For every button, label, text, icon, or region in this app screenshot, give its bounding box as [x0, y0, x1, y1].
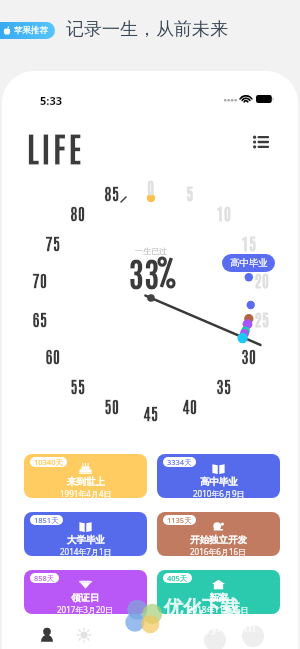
staticText: 858天 — [34, 573, 55, 583]
button[interactable]: 858天 — [24, 570, 147, 614]
staticText: 85 — [98, 182, 126, 203]
staticText: 开始独立开发 — [190, 534, 247, 546]
button[interactable]: 10340天 — [24, 454, 147, 498]
staticText: 领证日 — [71, 592, 100, 604]
staticText: 0 — [137, 176, 165, 197]
staticText: 20 — [248, 269, 276, 290]
staticText: 记录一生，从前未来 — [66, 18, 228, 41]
staticText: 10340天 — [34, 457, 63, 467]
staticText: 55 — [64, 375, 92, 396]
staticText: 65 — [26, 308, 54, 329]
button[interactable]: Profile — [32, 620, 62, 649]
button[interactable]: Settings — [69, 620, 99, 649]
staticText: 2018年11月16日 — [188, 604, 249, 614]
staticText: LIFE — [27, 125, 85, 169]
staticText: 30 — [235, 345, 263, 366]
staticText: 3334天 — [167, 457, 192, 467]
staticText: 新家 — [209, 592, 228, 604]
staticText: 2014年7月1日 — [60, 546, 112, 556]
staticText: 45 — [137, 402, 165, 423]
staticText: 60 — [39, 345, 67, 366]
staticText: 2017年3月20日 — [57, 604, 114, 614]
staticText: 80 — [64, 202, 92, 223]
staticText: 5 — [176, 182, 204, 203]
staticText: 来到世上 — [67, 476, 105, 488]
staticText: 405天 — [167, 573, 188, 583]
button[interactable]: 3334天 — [157, 454, 280, 498]
staticText: 10 — [210, 202, 238, 223]
staticText: 一生已过 — [121, 246, 181, 256]
button[interactable]: List view — [247, 129, 273, 155]
staticText: 1851天 — [34, 515, 59, 525]
staticText: 高中毕业 — [200, 476, 238, 488]
staticText: 70 — [26, 269, 54, 290]
staticText: 2016年6月16日 — [190, 546, 247, 556]
staticText: 50 — [98, 395, 126, 416]
staticText: www.yyxt.com — [174, 619, 256, 635]
staticText: 40 — [176, 395, 204, 416]
button[interactable]: 1135天 — [157, 512, 280, 556]
staticText: 15 — [235, 232, 263, 253]
staticText: 2010年6月9日 — [193, 488, 245, 498]
button[interactable]: 高中毕业 — [222, 254, 275, 272]
staticText: 1991年4月4日 — [60, 488, 112, 498]
button[interactable]: 1851天 — [24, 512, 147, 556]
staticText: 75 — [39, 232, 67, 253]
staticText: 高中毕业 — [230, 257, 268, 269]
staticText: 苹果推荐 — [14, 25, 48, 36]
staticText: 大学毕业 — [67, 534, 105, 546]
staticText: 5:33 — [40, 93, 62, 108]
staticText: 1135天 — [167, 515, 192, 525]
staticText: 33 — [129, 250, 160, 294]
staticText: 25 — [248, 308, 276, 329]
staticText: 35 — [210, 375, 238, 396]
staticText: 优化下载 — [164, 596, 240, 620]
button[interactable]: 苹果推荐 — [0, 22, 55, 39]
button[interactable]: 405天 — [157, 570, 280, 614]
